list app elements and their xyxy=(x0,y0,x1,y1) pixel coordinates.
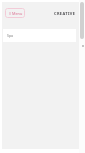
staticText: Menu xyxy=(12,11,23,16)
other: Scroll xyxy=(80,2,84,39)
button[interactable]: Spa xyxy=(3,29,76,42)
staticText: Spa xyxy=(7,33,14,38)
staticText: CREATIVE xyxy=(54,11,76,16)
button[interactable]: Open menu xyxy=(5,8,25,18)
